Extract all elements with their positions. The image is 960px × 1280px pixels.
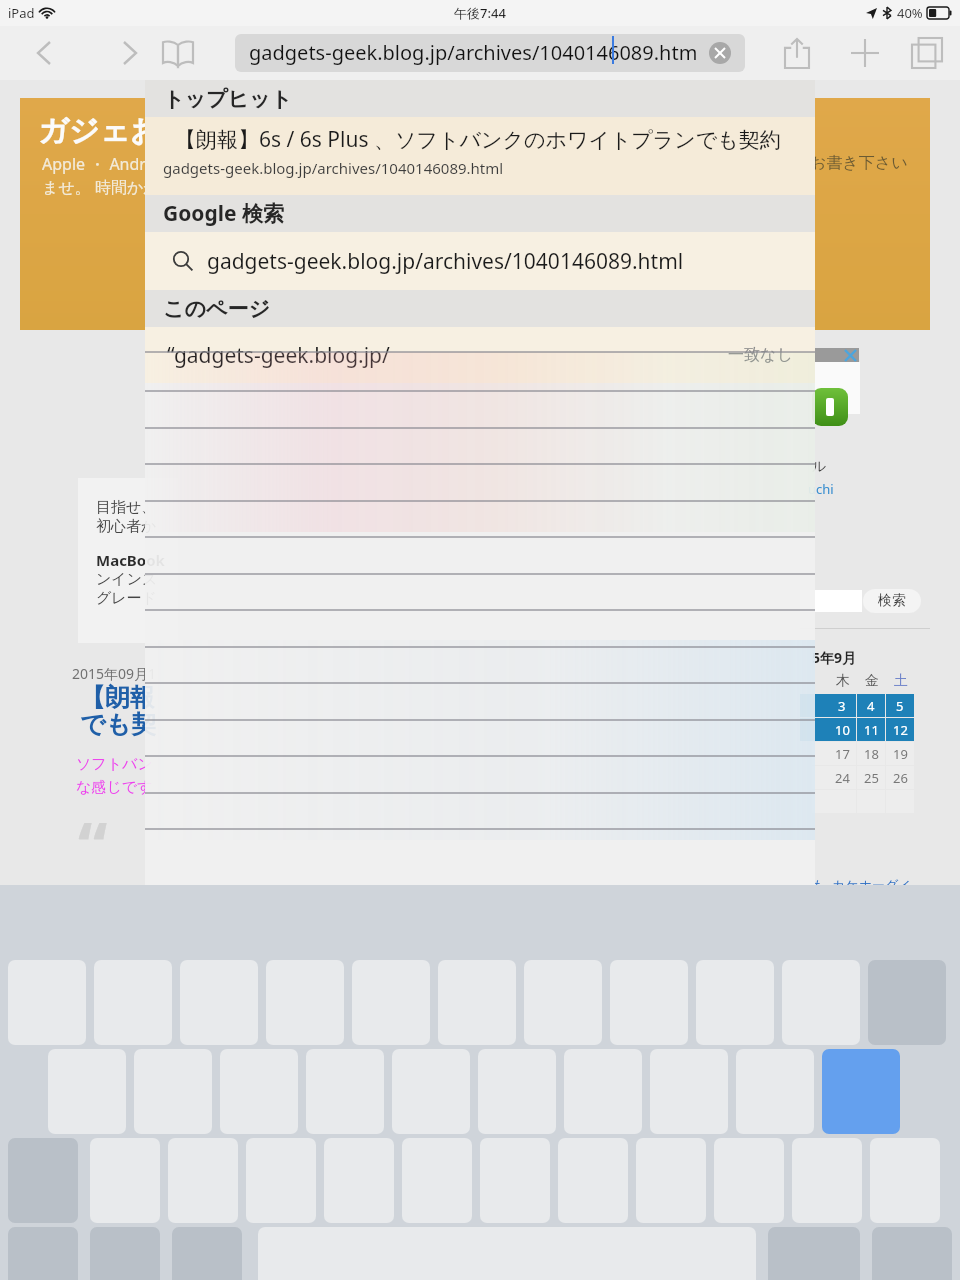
staticText: も カケホーダイ	[812, 876, 912, 894]
button[interactable]: Bookmarks	[152, 27, 204, 79]
button[interactable]: 【朗報】6s / 6s Plus 、ソフトバンクのホワイトプランでも契約可…	[145, 117, 815, 195]
staticText: ソフトバン	[76, 755, 153, 774]
button[interactable]: Clear	[709, 42, 731, 64]
staticText: 午後7:44	[454, 4, 506, 22]
staticText: Apple ・ Android	[42, 153, 174, 175]
staticText: gadgets-geek.blog.jp/archives/1040146089…	[163, 158, 504, 178]
staticText: 18	[864, 745, 879, 763]
staticText: 4	[867, 697, 875, 715]
staticText: な感じです	[76, 778, 153, 797]
staticText: MacBook	[96, 550, 165, 570]
staticText: でも契	[80, 709, 157, 740]
button[interactable]: Share	[772, 28, 822, 78]
staticText: 【朗報】6s / 6s Plus 、ソフトバンクのホワイトプランでも契約可…	[175, 125, 815, 154]
staticText: 土	[894, 672, 908, 690]
staticText: 5	[896, 697, 904, 715]
staticText: 金	[865, 672, 879, 690]
staticText: iPad	[8, 4, 35, 22]
staticText: uchi	[808, 480, 834, 498]
button[interactable]: Key	[822, 1049, 900, 1134]
staticText: 2015年09月1	[72, 664, 157, 683]
staticText: ル	[812, 458, 827, 476]
staticText: 12	[893, 721, 908, 739]
button[interactable]: gadgets-geek.blog.jp/archives/1040146089…	[235, 34, 745, 72]
staticText: 3	[838, 697, 846, 715]
staticText: 25	[864, 769, 879, 787]
staticText: このページ	[163, 296, 270, 322]
staticText: トップヒット	[163, 86, 292, 112]
button[interactable]: Forward	[108, 31, 152, 75]
staticText: 40%	[897, 4, 923, 22]
staticText: 10	[835, 721, 850, 739]
staticText: グレード	[96, 589, 158, 608]
staticText: gadgets-geek.blog.jp/archives/1040146089…	[249, 39, 698, 66]
staticText: ンインス	[96, 570, 158, 589]
staticText: ガジェおた	[38, 112, 192, 150]
staticText: 一致なし	[728, 345, 793, 365]
staticText: 木	[836, 672, 850, 690]
staticText: 検索	[878, 592, 906, 610]
staticText: 19	[893, 745, 908, 763]
staticText: 11	[864, 721, 879, 739]
button[interactable]: Back	[22, 31, 66, 75]
staticText: “	[78, 800, 108, 890]
staticText: ませ。 時間かかる	[42, 176, 177, 198]
staticText: 目指せ、	[96, 498, 157, 517]
staticText: 17	[835, 745, 850, 763]
button[interactable]: Tabs	[902, 28, 952, 78]
staticText: 26	[893, 769, 908, 787]
button[interactable]: “gadgets-geek.blog.jp/archives/104014608…	[145, 327, 815, 383]
staticText: お書き下さい	[810, 153, 908, 173]
staticText: 24	[835, 769, 850, 787]
button[interactable]: New Tab	[840, 28, 890, 78]
button[interactable]: gadgets-geek.blog.jp/archives/1040146089…	[145, 232, 815, 290]
staticText: 初心者か	[96, 517, 157, 536]
staticText: Google 検索	[163, 199, 284, 228]
staticText: gadgets-geek.blog.jp/archives/1040146089…	[207, 247, 684, 276]
staticText: 5年9月	[812, 648, 857, 667]
staticText: 【朗報	[80, 682, 155, 713]
staticText: “gadgets-geek.blog.jp/archives/104014608…	[167, 341, 447, 370]
